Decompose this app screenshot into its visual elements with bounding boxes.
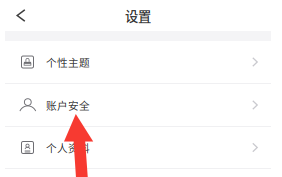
staticText: 个性主题 [46,54,90,70]
button[interactable]: 账户安全 [5,84,271,126]
staticText: 账户安全 [46,97,90,113]
button[interactable]: 个人资料 [5,127,271,168]
button[interactable]: 个性主题 [5,41,271,83]
staticText: 设置 [125,6,151,25]
button[interactable]: Back [7,0,35,32]
staticText: 个人资料 [46,140,90,155]
